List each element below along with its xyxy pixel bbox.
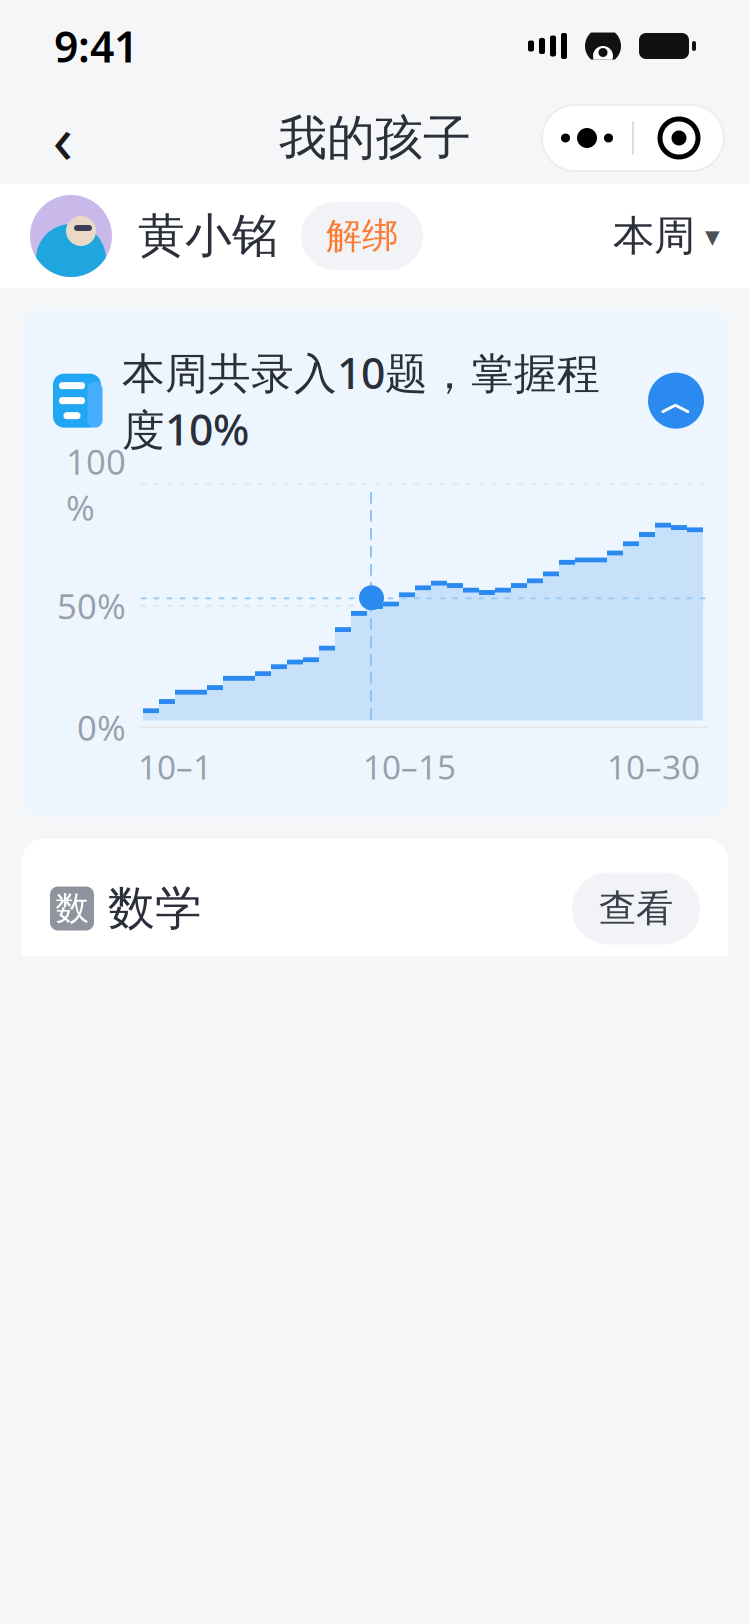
button[interactable]: 关闭 bbox=[634, 105, 724, 171]
staticText: 查看 bbox=[599, 886, 673, 931]
staticText: 我的孩子 bbox=[279, 108, 471, 167]
staticText: 10–30 bbox=[607, 744, 700, 789]
staticText: ▾ bbox=[705, 219, 720, 253]
staticText: ︿ bbox=[660, 384, 692, 423]
button[interactable]: 返回 bbox=[26, 101, 100, 175]
button[interactable]: 查看 bbox=[572, 873, 700, 944]
staticText: 本周 bbox=[613, 211, 695, 261]
staticText: 10–15 bbox=[363, 744, 456, 789]
button[interactable]: 更多 bbox=[542, 105, 632, 171]
staticText: 0% bbox=[77, 704, 126, 750]
staticText: 黄小铭 bbox=[138, 207, 279, 265]
staticText: 50% bbox=[57, 583, 126, 629]
staticText: 9:41 bbox=[54, 18, 138, 74]
button[interactable]: 本周 bbox=[613, 211, 720, 261]
button[interactable]: 解绑 bbox=[301, 202, 423, 270]
staticText: 数学 bbox=[108, 880, 202, 937]
staticText: ‹ bbox=[52, 94, 73, 182]
staticText: 本周共录入10题，掌握程度10% bbox=[122, 344, 600, 457]
staticText: 100% bbox=[66, 438, 126, 530]
staticText: 10–1 bbox=[138, 744, 212, 789]
staticText: 解绑 bbox=[326, 214, 398, 258]
button[interactable]: 收起 bbox=[648, 373, 704, 429]
staticText: 数 bbox=[55, 888, 88, 929]
